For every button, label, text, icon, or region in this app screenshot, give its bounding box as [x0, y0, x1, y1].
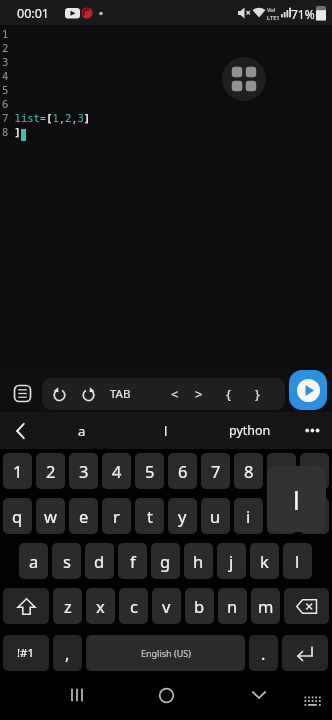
button[interactable] [7, 378, 37, 408]
button[interactable] [76, 382, 100, 406]
staticText: y [178, 505, 187, 527]
button[interactable] [284, 588, 329, 624]
button[interactable] [62, 680, 92, 710]
button[interactable]: , [53, 635, 82, 671]
button[interactable]: a [40, 412, 124, 449]
button[interactable]: python [208, 412, 292, 449]
button[interactable]: f [118, 543, 147, 579]
staticText: a [78, 422, 86, 440]
staticText: { [226, 385, 231, 403]
button[interactable]: c [119, 588, 148, 624]
button[interactable] [151, 680, 181, 710]
button[interactable]: 5 [135, 453, 164, 489]
staticText: 9 [277, 460, 287, 482]
button[interactable]: j [217, 543, 246, 579]
staticText: 8 [244, 460, 254, 482]
staticText: z [64, 595, 72, 617]
button[interactable]: m [251, 588, 280, 624]
staticText: t [147, 505, 153, 527]
staticText: f [130, 550, 136, 572]
button[interactable] [47, 382, 71, 406]
button[interactable]: 8 [234, 453, 263, 489]
staticText: h [193, 550, 204, 572]
staticText: b [194, 595, 205, 617]
staticText: x [96, 595, 105, 617]
button[interactable]: { [216, 382, 240, 406]
button[interactable]: y [168, 498, 197, 534]
button[interactable]: q [3, 498, 32, 534]
button[interactable]: > [187, 382, 211, 406]
staticText: a [29, 550, 39, 572]
staticText: r [113, 505, 120, 527]
button[interactable] [282, 635, 328, 671]
button[interactable]: u [201, 498, 230, 534]
button[interactable]: 3 [69, 453, 98, 489]
button[interactable]: 7 [201, 453, 230, 489]
staticText: e [79, 505, 89, 527]
staticText: g [160, 550, 171, 572]
button[interactable] [3, 588, 49, 624]
staticText: 4 [112, 460, 122, 482]
staticText: j [229, 550, 234, 572]
button[interactable]: r [102, 498, 131, 534]
button[interactable] [292, 412, 332, 449]
staticText: . [261, 642, 266, 664]
button[interactable]: 2 [36, 453, 65, 489]
button[interactable]: TAB [102, 382, 138, 406]
button[interactable]: 4 [102, 453, 131, 489]
button[interactable]: 6 [168, 453, 197, 489]
staticText: c [130, 595, 138, 617]
staticText: 5 [145, 460, 155, 482]
button[interactable]: !#1 [3, 635, 49, 671]
button[interactable]: 9 [267, 453, 296, 489]
button[interactable]: p [300, 498, 329, 534]
staticText: 0 [310, 460, 320, 482]
button[interactable]: x [86, 588, 115, 624]
button[interactable]: t [135, 498, 164, 534]
button[interactable]: e [69, 498, 98, 534]
button[interactable] [244, 680, 274, 710]
button[interactable]: i [234, 498, 263, 534]
staticText: python [229, 422, 271, 439]
button[interactable]: o [267, 498, 296, 534]
button[interactable]: 1 [3, 453, 32, 489]
button[interactable]: d [85, 543, 114, 579]
staticText: v [162, 595, 171, 617]
button[interactable]: 0 [300, 453, 329, 489]
button[interactable]: English (US) [86, 635, 245, 671]
button[interactable]: g [151, 543, 180, 579]
staticText: } [255, 385, 260, 403]
button[interactable]: } [245, 382, 269, 406]
button[interactable]: l [124, 412, 208, 449]
button[interactable]: a [19, 543, 48, 579]
button[interactable]: b [185, 588, 214, 624]
button[interactable]: s [52, 543, 81, 579]
button[interactable] [0, 412, 40, 449]
staticText: l [164, 422, 168, 440]
button[interactable]: h [184, 543, 213, 579]
button[interactable] [222, 57, 266, 101]
staticText: k [260, 550, 269, 572]
staticText: LTE1 [267, 14, 280, 22]
button[interactable]: n [218, 588, 247, 624]
staticText: s [63, 550, 71, 572]
staticText: , [65, 642, 70, 664]
staticText: 1 2 3 4 5 6 7 list=[1,2,3] 8 ] [2, 27, 91, 139]
button[interactable]: v [152, 588, 181, 624]
button[interactable]: w [36, 498, 65, 534]
staticText: TAB [110, 386, 131, 402]
button[interactable]: . [249, 635, 278, 671]
button[interactable]: k [250, 543, 279, 579]
button[interactable]: l [283, 543, 312, 579]
staticText: 71% [291, 6, 315, 22]
button[interactable]: z [53, 588, 82, 624]
staticText: m [258, 595, 274, 617]
staticText: 6 [178, 460, 188, 482]
button[interactable]: < [163, 382, 187, 406]
button[interactable] [300, 693, 326, 711]
staticText: 3 [79, 460, 89, 482]
staticText: n [227, 595, 238, 617]
button[interactable] [289, 370, 327, 410]
staticText: u [210, 505, 221, 527]
